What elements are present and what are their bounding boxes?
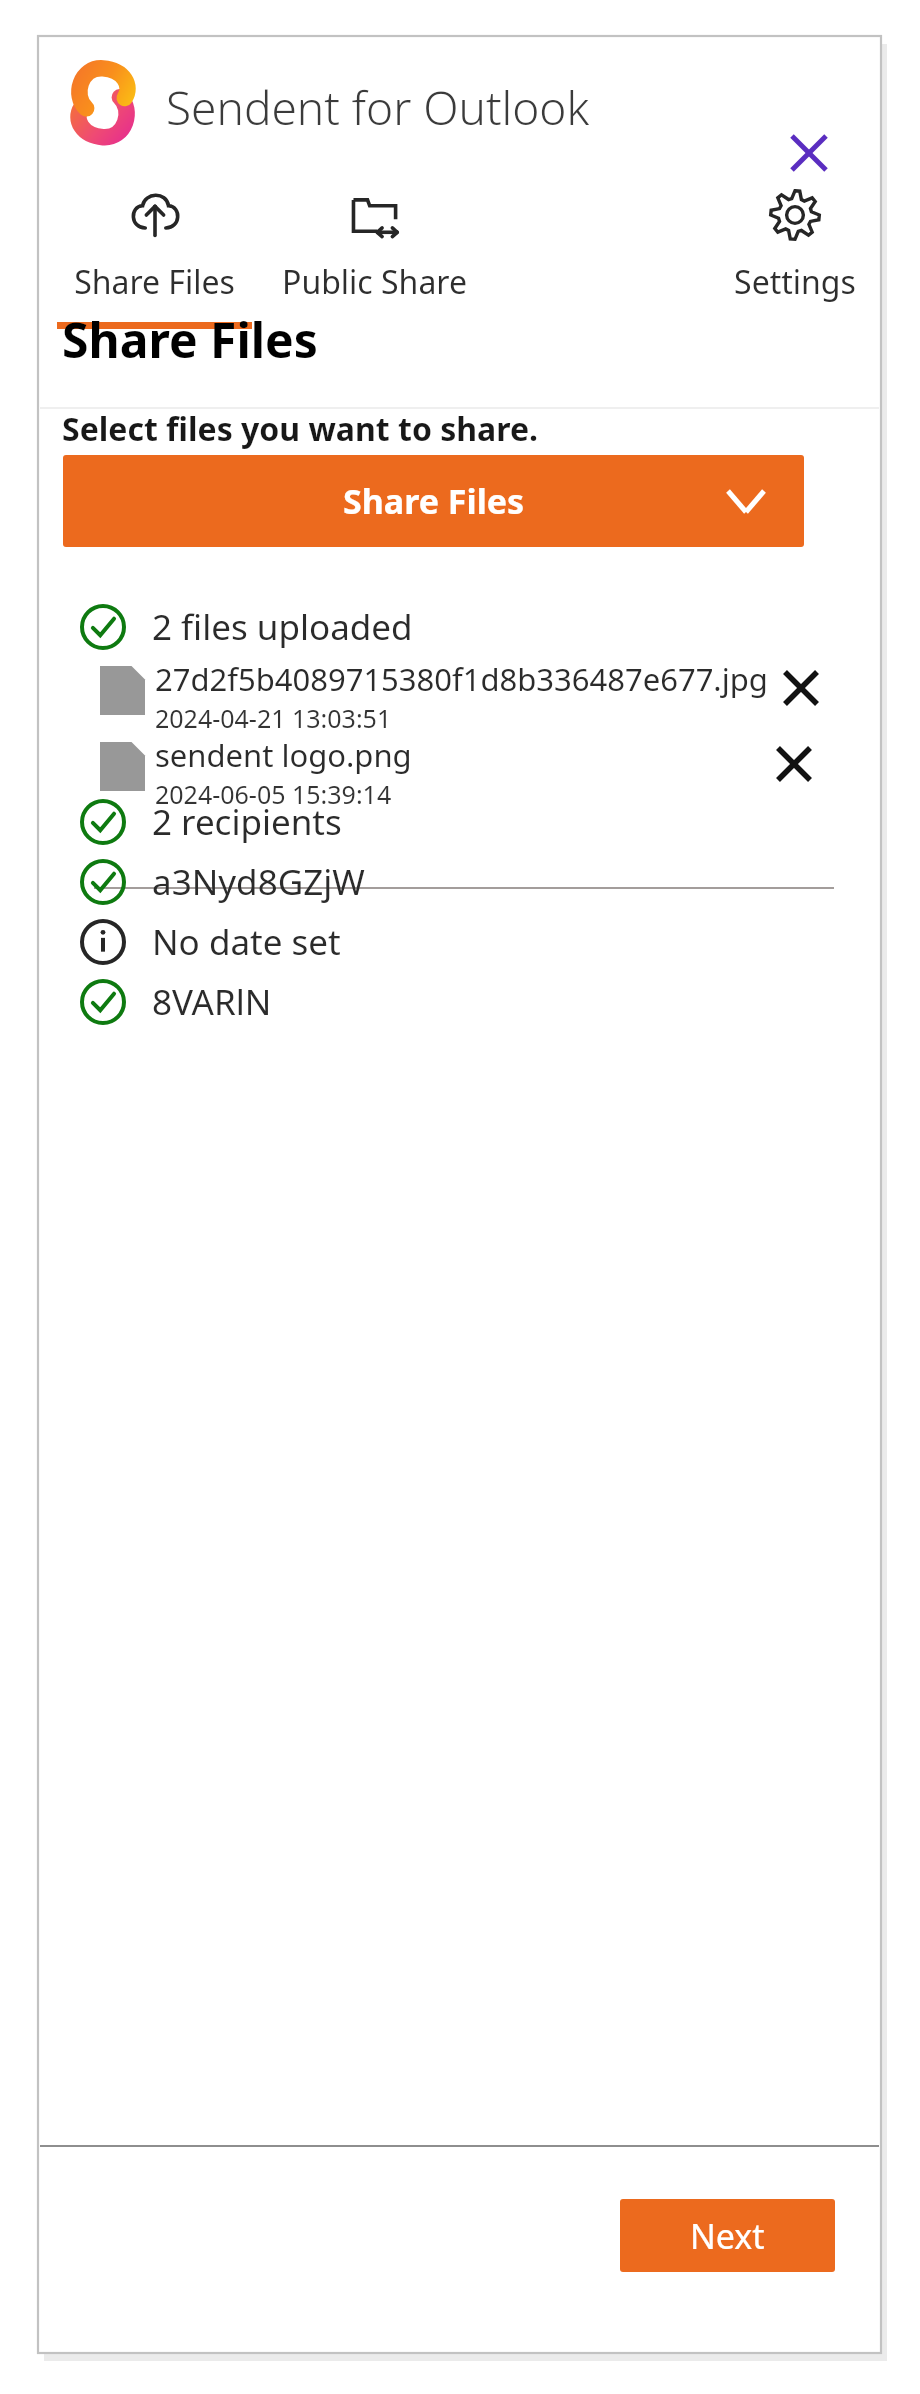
staticText: Next	[690, 2213, 765, 2259]
button[interactable]: Public Share	[274, 168, 474, 329]
staticText: Share Files	[62, 307, 318, 372]
staticText: No date set	[152, 918, 341, 966]
staticText: 2 recipients	[152, 798, 342, 846]
staticText: Public Share	[282, 260, 467, 304]
staticText: Sendent for Outlook	[166, 76, 590, 139]
button[interactable]: Share Files	[57, 168, 252, 329]
button[interactable]: Settings	[720, 168, 870, 329]
button[interactable]: 8VARlN	[80, 969, 700, 1035]
button[interactable]: 2 files uploaded	[80, 594, 700, 660]
staticText: Select files you want to share.	[62, 407, 539, 451]
button[interactable]: Remove file	[764, 734, 824, 794]
staticText: Share Files	[74, 260, 235, 304]
staticText: a3Nyd8GZjW	[152, 858, 365, 906]
staticText: sendent logo.png	[155, 734, 412, 776]
staticText: Share Files	[343, 478, 525, 524]
button[interactable]: a3Nyd8GZjW	[80, 849, 700, 915]
staticText: Settings	[734, 260, 856, 304]
staticText: 8VARlN	[152, 978, 272, 1026]
staticText: 27d2f5b4089715380f1d8b336487e677.jpg	[155, 658, 768, 700]
button[interactable]: 2 recipients	[80, 789, 700, 855]
button[interactable]: Next	[620, 2199, 835, 2272]
button[interactable]: Remove file	[771, 658, 831, 718]
button[interactable]: No date set	[80, 909, 700, 975]
staticText: 2024-04-21 13:03:51	[155, 701, 392, 734]
staticText: 2 files uploaded	[152, 603, 413, 651]
button[interactable]: Share Files	[63, 455, 804, 547]
button[interactable]: Close	[776, 120, 842, 186]
staticText: 2024-06-05 15:39:14	[155, 777, 392, 810]
